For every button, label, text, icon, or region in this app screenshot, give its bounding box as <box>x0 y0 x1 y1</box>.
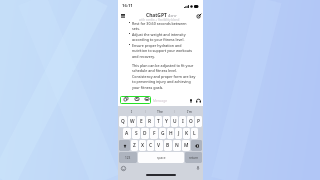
button[interactable]: space <box>138 152 184 163</box>
staticText: U <box>173 118 177 125</box>
staticText: F <box>153 130 156 137</box>
button[interactable]: M <box>182 140 190 151</box>
button[interactable]: J <box>175 128 182 139</box>
button[interactable]: L <box>191 128 198 139</box>
button[interactable]: Backspace <box>191 140 202 151</box>
button[interactable]: F <box>150 128 158 139</box>
staticText: Adjust the weight and intensity <box>132 32 186 37</box>
button[interactable]: T <box>155 116 162 127</box>
staticText: N <box>175 142 179 149</box>
staticText: G <box>161 130 165 137</box>
button[interactable]: X <box>139 140 146 151</box>
button[interactable]: New chat <box>195 12 202 19</box>
button[interactable]: Shift <box>119 140 130 151</box>
staticText: The <box>157 109 163 114</box>
staticText: I <box>131 109 133 114</box>
button[interactable]: return <box>185 152 202 163</box>
button[interactable]: A <box>123 128 131 139</box>
staticText: Q <box>121 118 125 125</box>
button[interactable]: S <box>132 128 140 139</box>
button[interactable]: G <box>159 128 166 139</box>
staticText: W <box>130 118 135 125</box>
button[interactable]: 123 <box>119 152 137 163</box>
staticText: H <box>169 130 173 137</box>
button[interactable]: Good response <box>133 94 141 104</box>
staticText: This plan can be adjusted to fit your <box>132 63 194 68</box>
button[interactable]: N <box>173 140 181 151</box>
staticText: your fitness goals. <box>132 85 164 90</box>
staticText: and recovery. <box>132 54 156 59</box>
staticText: with cardio + flexibility blend <box>139 18 180 22</box>
staticText: Rest for 30-60 seconds between <box>132 21 187 26</box>
button[interactable]: Dictation <box>195 165 201 171</box>
button[interactable]: I'm <box>175 106 203 116</box>
staticText: 16:11 <box>122 3 133 9</box>
button[interactable]: Bad response <box>143 94 151 104</box>
button[interactable]: Voice mode <box>195 97 202 104</box>
button[interactable]: E <box>137 116 145 127</box>
button[interactable]: O <box>187 116 194 127</box>
staticText: sets. <box>132 26 140 31</box>
staticText: R <box>148 118 152 125</box>
button[interactable]: Copy <box>122 94 130 104</box>
button[interactable]: I <box>118 106 145 116</box>
staticText: S <box>135 130 138 137</box>
staticText: V <box>157 142 161 149</box>
staticText: Z <box>133 142 136 149</box>
staticText: to preventing injury and achieving <box>132 79 191 84</box>
staticText: A <box>125 130 129 137</box>
button[interactable]: W <box>128 116 136 127</box>
staticText: Message <box>153 98 168 103</box>
staticText: Ensure proper hydration and <box>132 43 182 48</box>
button[interactable]: I <box>179 116 186 127</box>
staticText: B <box>166 142 170 149</box>
button[interactable]: V <box>155 140 163 151</box>
staticText: E <box>140 118 143 125</box>
staticText: I'm <box>187 109 192 114</box>
button[interactable]: U <box>171 116 178 127</box>
button[interactable]: K <box>183 128 190 139</box>
button[interactable]: B <box>164 140 172 151</box>
staticText: P <box>197 118 200 125</box>
staticText: I <box>182 118 184 125</box>
button[interactable]: Emoji keyboard <box>120 165 126 171</box>
button[interactable]: C <box>147 140 154 151</box>
button[interactable]: R <box>146 116 154 127</box>
staticText: O <box>189 118 193 125</box>
staticText: Consistency and proper form are key <box>132 74 196 79</box>
staticText: 4o <box>168 13 173 19</box>
staticText: T <box>157 118 160 125</box>
button[interactable]: Z <box>131 140 138 151</box>
staticText: D <box>143 130 147 137</box>
staticText: nutrition to support your workouts <box>132 48 193 53</box>
staticText: according to your fitness level. <box>132 37 185 42</box>
staticText: X <box>141 142 145 149</box>
button[interactable]: Open sidebar <box>119 12 126 19</box>
staticText: K <box>185 130 189 137</box>
staticText: schedule and fitness level. <box>132 68 177 73</box>
staticText: J <box>178 130 180 137</box>
button[interactable]: D <box>141 128 149 139</box>
staticText: ChatGPT <box>146 12 167 19</box>
button[interactable]: Dictate <box>188 98 194 104</box>
staticText: return <box>189 156 199 160</box>
staticText: M <box>184 142 189 149</box>
staticText: C <box>149 142 153 149</box>
button[interactable]: Q <box>119 116 127 127</box>
staticText: space <box>157 156 166 160</box>
button[interactable]: Y <box>163 116 170 127</box>
staticText: Y <box>165 118 168 125</box>
staticText: 123 <box>125 156 131 160</box>
button[interactable]: The <box>146 106 174 116</box>
button[interactable]: P <box>195 116 202 127</box>
staticText: L <box>193 130 196 137</box>
button[interactable]: H <box>167 128 174 139</box>
